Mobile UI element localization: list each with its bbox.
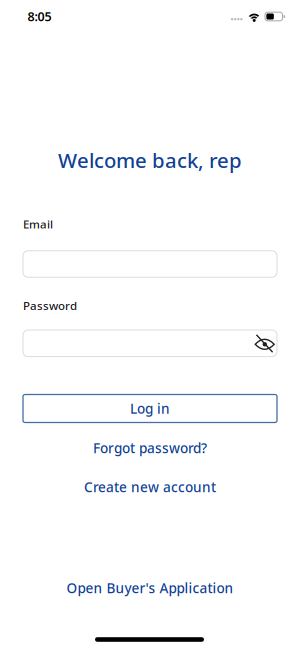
staticText: Password: [23, 298, 77, 313]
staticText: Create new account: [84, 478, 216, 496]
staticText: Open Buyer's Application: [66, 579, 233, 597]
staticText: Forgot password?: [93, 439, 207, 457]
button[interactable]: Log in: [23, 394, 277, 422]
button[interactable]: Show password: [250, 331, 278, 357]
button[interactable]: Open Buyer's Application: [66, 579, 233, 597]
staticText: Email: [23, 216, 53, 232]
staticText: 8:05: [27, 8, 51, 25]
button[interactable]: Create new account: [84, 478, 216, 496]
staticText: Log in: [130, 399, 170, 418]
staticText: Welcome back, rep: [58, 146, 242, 174]
button[interactable]: Forgot password?: [93, 439, 207, 457]
